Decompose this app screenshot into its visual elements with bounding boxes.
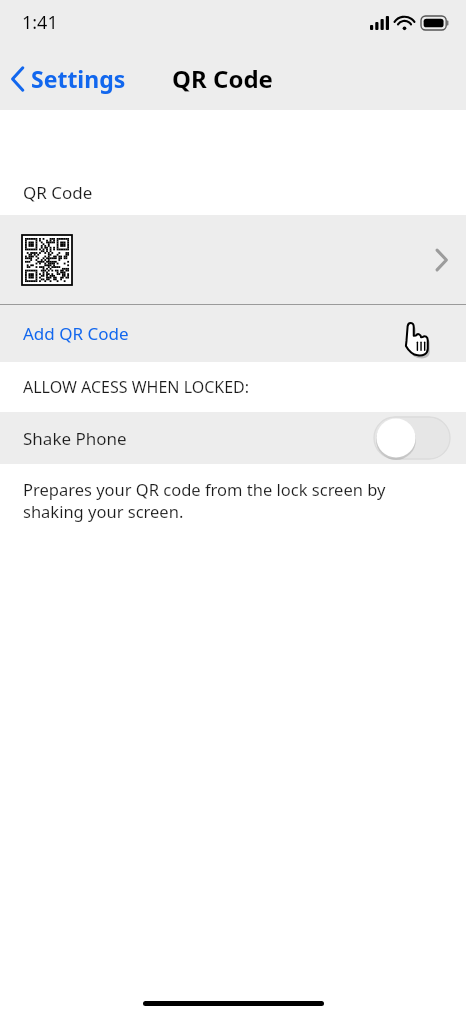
staticText: Prepares your QR code from the lock scre… — [23, 478, 386, 500]
staticText: shaking your screen. — [23, 500, 184, 522]
staticText: Shake Phone — [23, 427, 127, 450]
staticText: ALLOW ACESS WHEN LOCKED: — [23, 376, 250, 398]
staticText: Add QR Code — [23, 322, 129, 345]
staticText: QR Code — [172, 62, 273, 95]
button[interactable]: Shake Phone toggle — [374, 417, 450, 459]
staticText: Settings — [31, 63, 126, 94]
staticText: 1:41 — [22, 10, 58, 35]
button[interactable]: Shake Phone — [0, 412, 466, 464]
button[interactable]: Add QR Code — [0, 305, 466, 362]
button[interactable]: Settings — [10, 63, 126, 94]
button[interactable] — [0, 215, 466, 304]
staticText: QR Code — [23, 181, 93, 204]
